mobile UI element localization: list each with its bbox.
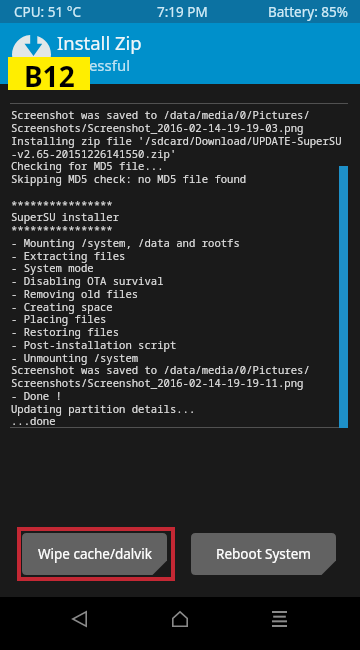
staticText: Successful — [57, 55, 131, 75]
staticText: Skipping MD5 check: no MD5 file found — [11, 172, 247, 186]
staticText: - System mode — [11, 261, 94, 275]
staticText: B12 — [24, 57, 75, 90]
staticText: 7:19 PM — [157, 3, 208, 21]
staticText: Install Zip — [57, 30, 142, 55]
staticText: Updating partition details... — [11, 402, 196, 416]
button[interactable]: Reboot System — [191, 533, 336, 575]
staticText: **************** — [11, 223, 113, 237]
staticText: - Creating space — [11, 300, 113, 314]
staticText: **************** — [11, 198, 113, 212]
staticText: - Done ! — [11, 389, 62, 403]
staticText: Installing zip file '/sdcard/Download/UP… — [11, 134, 342, 148]
staticText: - Restoring files — [11, 325, 120, 339]
staticText: SuperSU installer — [11, 210, 120, 224]
staticText: -v2.65-20151226141550.zip' — [11, 147, 177, 161]
staticText: - Post-installation script — [11, 338, 177, 352]
staticText: Wipe cache/dalvik — [38, 545, 152, 563]
staticText: ...done — [11, 414, 56, 428]
button[interactable]: Recent apps — [249, 597, 309, 641]
staticText: CPU: 51 °C — [14, 3, 81, 21]
button[interactable]: Wipe cache/dalvik — [22, 533, 167, 575]
staticText: - Mounting /system, /data and rootfs — [11, 236, 240, 250]
button[interactable]: Back — [49, 597, 109, 641]
staticText: - Unmounting /system — [11, 351, 139, 365]
staticText: - Placing files — [11, 312, 107, 326]
staticText: - Disabling OTA survival — [11, 274, 164, 288]
staticText: Checking for MD5 file... — [11, 159, 164, 173]
staticText: Battery: 85% — [268, 3, 348, 21]
staticText: Reboot System — [216, 545, 311, 563]
staticText: Screenshots/Screenshot_2016-02-14-19-19-… — [11, 376, 304, 390]
button[interactable]: Home — [150, 597, 210, 641]
staticText: Screenshot was saved to /data/media/0/Pi… — [11, 108, 310, 122]
staticText: Screenshot was saved to /data/media/0/Pi… — [11, 363, 310, 377]
staticText: Screenshots/Screenshot_2016-02-14-19-19-… — [11, 121, 304, 135]
staticText: - Removing old files — [11, 287, 139, 301]
staticText: - Extracting files — [11, 249, 126, 263]
